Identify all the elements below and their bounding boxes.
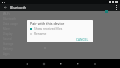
button[interactable]: Display — [3, 32, 30, 37]
button[interactable]: Back — [18, 59, 35, 68]
staticText: Sound — [3, 37, 12, 41]
staticText: Storage — [3, 42, 14, 46]
button[interactable]: More options — [112, 4, 120, 11]
button[interactable]: Home — [35, 59, 52, 68]
button[interactable]: CANCEL — [74, 37, 91, 42]
staticText: Bluetooth — [3, 17, 16, 21]
staticText: Show received files — [34, 27, 63, 31]
staticText: Wi‑Fi — [3, 12, 10, 16]
staticText: Apps — [3, 52, 10, 56]
staticText: Battery — [3, 47, 13, 51]
staticText: More — [3, 27, 10, 31]
button[interactable]: Wi‑Fi — [3, 12, 30, 17]
staticText: Data usage — [3, 22, 18, 26]
staticText: Pair with this device — [30, 21, 65, 26]
button[interactable]: Recent apps — [52, 59, 69, 68]
button[interactable]: More — [3, 27, 30, 32]
button[interactable]: Data usage — [3, 22, 30, 27]
button[interactable]: Navigate up — [0, 4, 10, 11]
staticText: Bluetooth — [10, 5, 27, 10]
button[interactable]: Bluetooth — [3, 17, 30, 22]
button[interactable]: Show received files — [27, 26, 93, 31]
button[interactable]: Volume — [86, 59, 103, 68]
staticText: Display — [3, 32, 13, 36]
staticText: CANCEL — [76, 38, 89, 41]
staticText: Rename — [34, 32, 47, 36]
button[interactable]: Rename — [27, 31, 93, 36]
button[interactable]: Screenshot — [69, 59, 86, 68]
button[interactable]: Sound — [3, 37, 30, 42]
